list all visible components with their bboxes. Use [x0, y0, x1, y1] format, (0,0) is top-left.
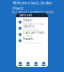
button[interactable]: Transfers [16, 25, 48, 31]
button[interactable]: Balance [16, 19, 48, 25]
button[interactable]: Pay [25, 61, 32, 66]
staticText: Balance [23, 19, 33, 22]
button[interactable]: Cards [32, 61, 39, 66]
staticText: Transfers [23, 25, 34, 28]
staticText: 3 pending [23, 28, 39, 32]
staticText: Rewards [23, 37, 33, 41]
button[interactable]: Rewards [16, 38, 48, 44]
staticText: 1,240 points [23, 41, 42, 44]
button[interactable]: More [40, 61, 47, 66]
staticText: Your account summary for today [11, 10, 52, 14]
staticText: Dashboard [19, 13, 33, 17]
button[interactable]: Home [17, 61, 24, 66]
staticText: Welcome back, Jordan Hayes [12, 0, 51, 10]
staticText: Updated today [23, 22, 43, 26]
button[interactable]: Cards and limits [16, 31, 48, 38]
staticText: Cards and limits [23, 31, 44, 34]
staticText: 2 active [23, 34, 33, 38]
